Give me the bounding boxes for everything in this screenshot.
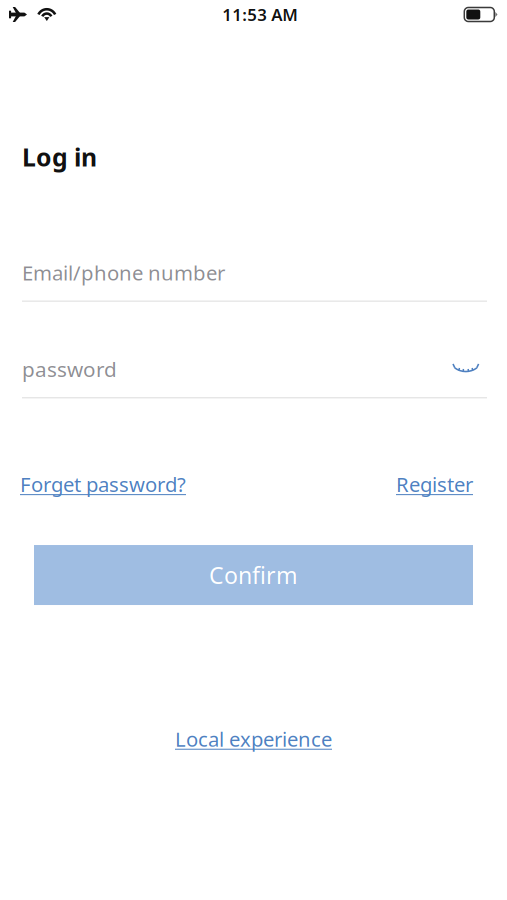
staticText: Forget password? xyxy=(20,470,186,498)
button[interactable]: Show password xyxy=(453,359,487,379)
staticText: Log in xyxy=(22,140,97,174)
button[interactable]: password xyxy=(22,355,453,383)
staticText: Local experience xyxy=(175,725,332,753)
button[interactable]: Forget password? xyxy=(20,470,186,498)
button[interactable]: Local experience xyxy=(175,725,332,753)
staticText: Confirm xyxy=(209,559,298,591)
staticText: password xyxy=(22,355,117,383)
button[interactable]: Confirm xyxy=(34,545,473,605)
button[interactable]: Register xyxy=(396,470,473,498)
staticText: Email/phone number xyxy=(22,259,225,286)
button[interactable]: Email/phone number xyxy=(0,259,507,302)
staticText: Register xyxy=(396,470,473,498)
staticText: 11:53 AM xyxy=(222,3,298,26)
